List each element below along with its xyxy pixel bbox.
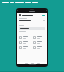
- button[interactable]: Option: [33, 41, 45, 44]
- button[interactable]: Option: [19, 46, 31, 49]
- button[interactable]: Option: [19, 36, 31, 39]
- button[interactable]: Option: [33, 36, 45, 39]
- button[interactable]: Option: [19, 41, 31, 44]
- button[interactable]: [19, 27, 45, 30]
- button[interactable]: [19, 14, 45, 16]
- button[interactable]: [19, 20, 45, 21]
- button[interactable]: Tab: [25, 63, 28, 64]
- button[interactable]: Tab: [37, 63, 40, 64]
- button[interactable]: Tab: [31, 63, 34, 64]
- button[interactable]: Option: [33, 46, 45, 49]
